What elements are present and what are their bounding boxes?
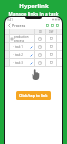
staticText: ID [39, 30, 42, 34]
staticText: task 3 [15, 61, 23, 65]
staticText: task 1 [15, 45, 23, 49]
staticText: Process [12, 23, 26, 28]
button[interactable]: Link [29, 53, 33, 57]
button[interactable]: Action 3 [55, 23, 60, 28]
button[interactable]: Link [29, 61, 33, 65]
button[interactable]: Action 1 [45, 23, 50, 28]
button[interactable]: Back [7, 23, 12, 28]
staticText: production process [14, 35, 34, 42]
staticText: Diff [49, 30, 54, 34]
staticText: Manage links in a task [8, 11, 59, 17]
button[interactable]: task 3 [5, 59, 62, 66]
button[interactable]: Click/tap to link [16, 91, 51, 100]
button[interactable]: Action 2 [50, 23, 55, 28]
staticText: Click/tap to link [19, 93, 48, 98]
button[interactable]: production process [5, 35, 62, 42]
staticText: 9:41 [7, 18, 13, 22]
button[interactable]: task 2 [5, 51, 62, 58]
button[interactable]: task 1 [5, 43, 62, 50]
staticText: Hyperlink [19, 2, 49, 10]
staticText: task 2 [15, 53, 23, 57]
button[interactable]: Link [29, 45, 33, 49]
